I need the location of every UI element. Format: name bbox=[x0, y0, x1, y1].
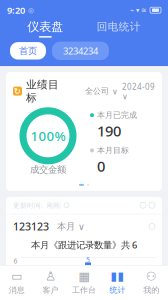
staticText: 3234234 bbox=[63, 45, 98, 57]
button[interactable]: 2024-09 ∨ bbox=[122, 81, 155, 101]
staticText: 本月目标 bbox=[97, 145, 129, 155]
staticText: 5 bbox=[86, 255, 90, 264]
staticText: 仪表盘 bbox=[27, 19, 63, 34]
button[interactable]: Options bbox=[149, 223, 155, 229]
button[interactable]: Refresh bbox=[140, 202, 146, 208]
button[interactable]: 仪表盘 bbox=[21, 19, 69, 38]
button[interactable]: Settings bbox=[149, 202, 155, 208]
button[interactable]: ▦ bbox=[67, 270, 101, 295]
staticText: 首页 bbox=[19, 45, 37, 57]
staticText: 本月已完成 bbox=[97, 110, 137, 120]
staticText: 工作台 bbox=[72, 285, 96, 295]
staticText: 3 bbox=[13, 280, 17, 289]
staticText: 4 bbox=[13, 272, 17, 281]
staticText: 回电统计 bbox=[97, 20, 141, 33]
staticText: ◎ bbox=[28, 6, 34, 14]
staticText: ♙ bbox=[45, 270, 56, 283]
staticText: 消息 bbox=[9, 285, 25, 295]
staticText: 我的 bbox=[143, 285, 159, 295]
staticText: 0 bbox=[97, 156, 105, 176]
staticText: ⌁ ▾ ≋ bbox=[130, 6, 147, 14]
staticText: 123123 bbox=[13, 219, 49, 234]
button[interactable]: ♙ bbox=[34, 270, 67, 295]
staticText: 成交金额 bbox=[30, 164, 66, 175]
staticText: 2024-09 ∨ bbox=[122, 81, 155, 101]
staticText: 业绩目标 bbox=[26, 78, 59, 104]
button[interactable]: 本月 ∨ bbox=[57, 221, 85, 232]
staticText: 9:20 bbox=[7, 4, 25, 16]
staticText: ▮▮ bbox=[111, 270, 125, 283]
button[interactable]: ▮▮ bbox=[101, 270, 134, 295]
staticText: ▭ bbox=[11, 270, 22, 283]
staticText: 客户 bbox=[42, 285, 58, 295]
staticText: 统计 bbox=[110, 285, 126, 295]
button[interactable]: 3234234 bbox=[52, 42, 109, 60]
button[interactable]: ⚇ bbox=[134, 270, 168, 295]
staticText: 本月《跟进记录数量》共 6 bbox=[31, 239, 137, 251]
staticText: ⚇ bbox=[146, 270, 157, 283]
staticText: 本月 ∨ bbox=[57, 221, 85, 232]
staticText: ▦ bbox=[78, 270, 89, 283]
staticText: 100% bbox=[30, 127, 65, 145]
staticText: 全公司 ∨ bbox=[85, 86, 118, 96]
button[interactable]: 全公司 ∨ bbox=[85, 86, 118, 96]
staticText: 6 bbox=[13, 256, 17, 265]
staticText: 2 bbox=[13, 288, 17, 297]
button[interactable]: 首页 bbox=[10, 42, 46, 60]
button[interactable]: 回电统计 bbox=[91, 20, 147, 37]
staticText: 5 bbox=[13, 264, 17, 273]
staticText: ↻ bbox=[14, 87, 21, 96]
button[interactable]: ▭ bbox=[0, 270, 34, 295]
staticText: 更新时间: 刚刚 bbox=[13, 201, 61, 210]
staticText: 190 bbox=[97, 121, 121, 141]
